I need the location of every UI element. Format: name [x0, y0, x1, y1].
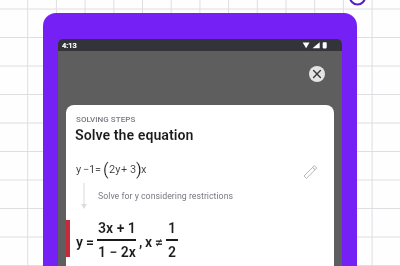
- staticText: Solve for y considering restrictions: [98, 191, 234, 201]
- staticText: SOLVING STEPS: [76, 115, 136, 124]
- staticText: =: [95, 163, 102, 176]
- staticText: y: [76, 234, 84, 250]
- staticText: 1: [89, 163, 96, 176]
- staticText: 2y: [109, 163, 121, 176]
- staticText: 2: [168, 244, 177, 260]
- staticText: 3x + 1: [98, 220, 136, 236]
- staticText: 1 − 2x: [98, 244, 136, 260]
- staticText: 3: [130, 163, 137, 176]
- staticText: 1: [168, 220, 177, 236]
- staticText: y: [76, 163, 82, 176]
- button[interactable]: Edit: [301, 160, 321, 180]
- staticText: ≠: [155, 234, 164, 250]
- staticText: x: [141, 163, 147, 176]
- staticText: ): [136, 160, 142, 179]
- staticText: 4:13: [62, 41, 77, 50]
- staticText: x: [145, 234, 153, 250]
- staticText: −: [83, 163, 90, 176]
- staticText: (: [103, 160, 109, 179]
- staticText: Solve the equation: [75, 127, 194, 144]
- button[interactable]: Close: [309, 66, 325, 82]
- staticText: +: [121, 163, 128, 176]
- staticText: ,: [139, 234, 143, 250]
- staticText: =: [86, 234, 95, 250]
